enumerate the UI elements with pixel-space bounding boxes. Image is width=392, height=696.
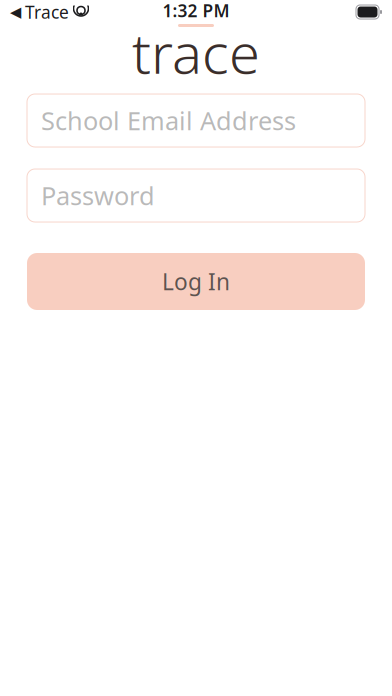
button[interactable]: Log In (27, 253, 365, 310)
staticText: ◀ (10, 4, 21, 20)
staticText: Password (41, 179, 155, 212)
staticText: School Email Address (41, 104, 296, 137)
staticText: Trace (25, 0, 69, 23)
staticText: Log In (162, 266, 230, 296)
staticText: trace (132, 15, 260, 89)
staticText: 1:32 PM (162, 0, 229, 22)
